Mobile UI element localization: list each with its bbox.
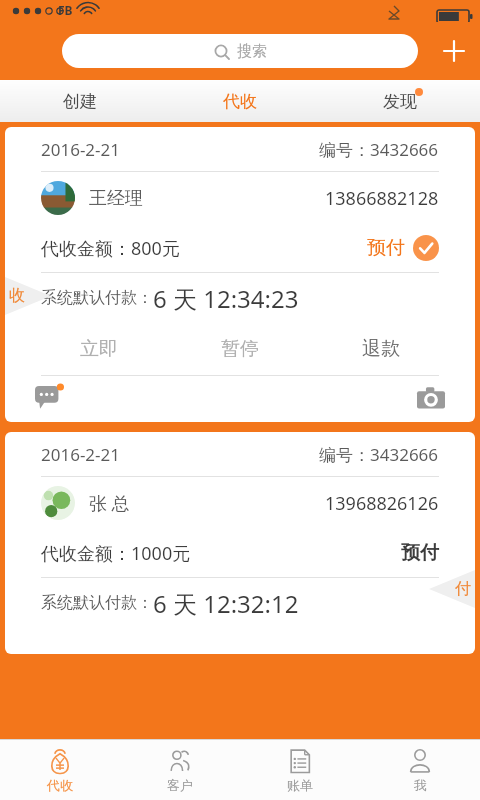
staticText: 编号：3432666 bbox=[319, 443, 439, 466]
button[interactable]: 创建 bbox=[0, 80, 160, 122]
button[interactable]: 发现 bbox=[320, 80, 480, 122]
staticText: 暂停 bbox=[221, 337, 259, 361]
button[interactable]: 账单 bbox=[240, 740, 360, 800]
staticText: 代收 bbox=[223, 91, 257, 112]
staticText: FB bbox=[58, 2, 73, 18]
button[interactable]: 立即 bbox=[29, 323, 169, 375]
staticText: 收 bbox=[9, 286, 25, 306]
staticText: 预付 bbox=[401, 541, 439, 565]
staticText: 客户 bbox=[167, 777, 193, 793]
button[interactable]: 我 bbox=[360, 740, 480, 800]
button[interactable]: 代收 bbox=[0, 740, 120, 800]
button[interactable]: 2016-2-21 bbox=[5, 127, 475, 422]
staticText: 编号：3432666 bbox=[319, 138, 439, 161]
staticText: 立即 bbox=[80, 337, 118, 361]
button[interactable]: 代收 bbox=[160, 80, 320, 122]
button[interactable]: Messages bbox=[35, 381, 71, 417]
staticText: 预付 bbox=[367, 236, 405, 260]
button[interactable]: 2016-2-21 bbox=[5, 432, 475, 654]
staticText: 代收金额：1000元 bbox=[41, 541, 191, 566]
staticText: 我 bbox=[414, 777, 427, 793]
button[interactable]: 搜索 bbox=[62, 34, 418, 68]
staticText: 张 总 bbox=[89, 491, 130, 516]
button[interactable]: 退款 bbox=[310, 323, 451, 375]
staticText: 2016-2-21 bbox=[41, 443, 121, 466]
staticText: 代收金额：800元 bbox=[41, 236, 180, 261]
button[interactable]: Add bbox=[428, 25, 480, 77]
staticText: 付 bbox=[455, 579, 471, 599]
staticText: 6 天 12:34:23 bbox=[153, 282, 299, 315]
button[interactable]: 暂停 bbox=[169, 323, 310, 375]
staticText: 2016-2-21 bbox=[41, 138, 121, 161]
staticText: 系统默认付款： bbox=[41, 593, 153, 613]
staticText: 6 天 12:32:12 bbox=[153, 587, 299, 620]
staticText: 系统默认付款： bbox=[41, 288, 153, 308]
staticText: 创建 bbox=[63, 91, 97, 112]
staticText: 代收 bbox=[47, 777, 73, 793]
staticText: 发现 bbox=[383, 91, 417, 112]
button[interactable]: 客户 bbox=[120, 740, 240, 800]
staticText: 13968826126 bbox=[325, 491, 439, 516]
staticText: 账单 bbox=[287, 777, 313, 793]
staticText: 退款 bbox=[362, 337, 400, 361]
button[interactable]: Camera bbox=[409, 381, 445, 417]
staticText: 搜索 bbox=[237, 42, 267, 61]
staticText: 13866882128 bbox=[325, 186, 439, 211]
staticText: 王经理 bbox=[89, 187, 143, 210]
